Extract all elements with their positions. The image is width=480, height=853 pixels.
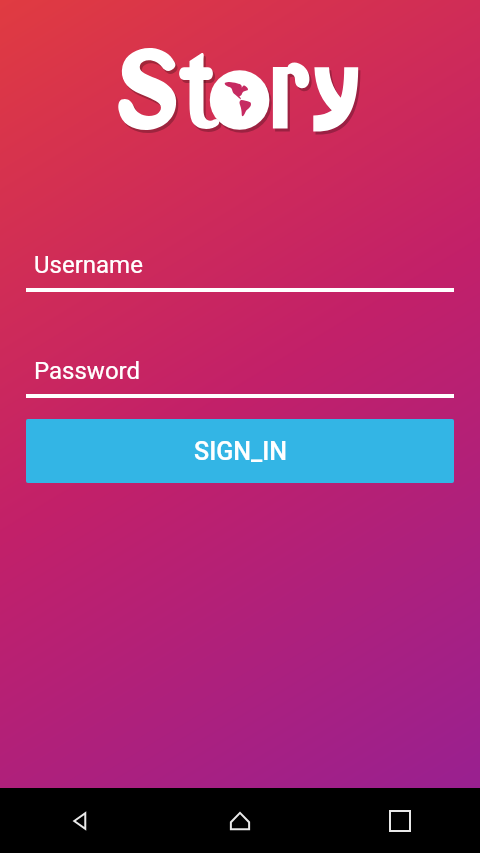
button[interactable]: Recent apps — [320, 788, 480, 853]
button[interactable]: Home — [160, 788, 320, 853]
staticText: Password — [34, 357, 141, 385]
staticText: Username — [34, 251, 143, 279]
staticText: SIGN_IN — [194, 437, 287, 466]
button[interactable]: SIGN_IN — [26, 419, 454, 483]
button[interactable]: Back — [0, 788, 160, 853]
